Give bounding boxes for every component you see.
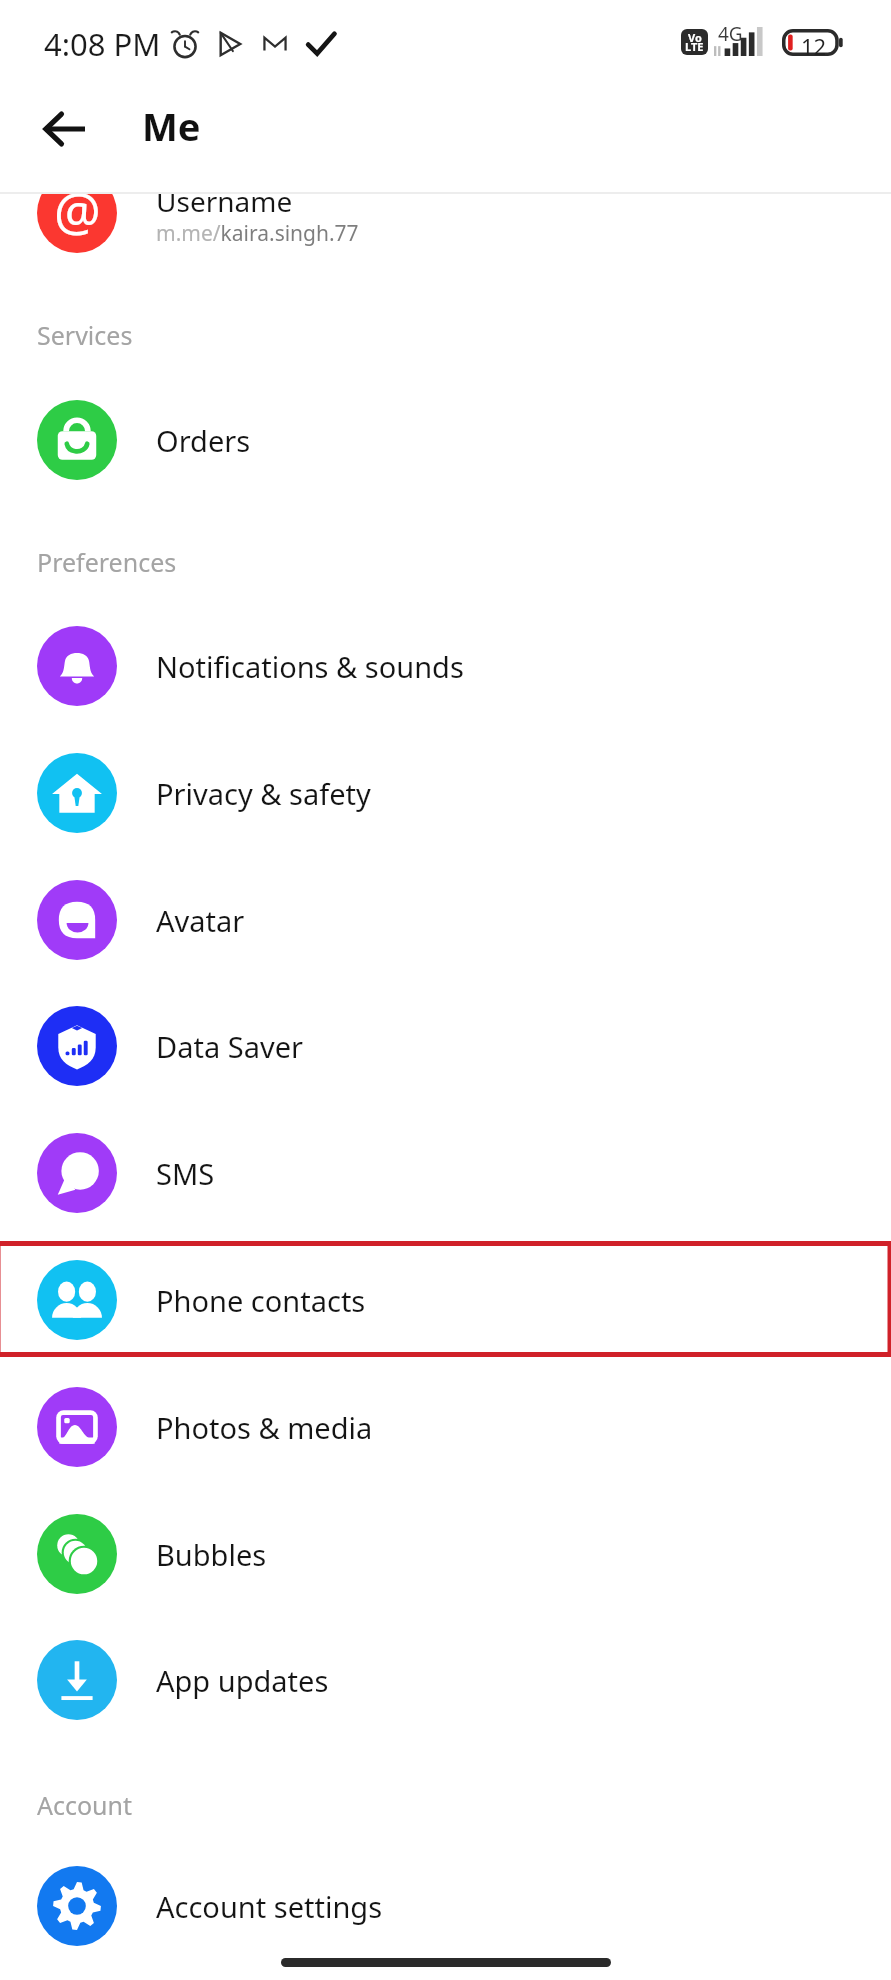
staticText: m.me/kaira.singh.77: [156, 219, 359, 248]
button[interactable]: Photos & media: [0, 1364, 891, 1490]
staticText: 4:08 PM: [44, 23, 161, 65]
staticText: Notifications & sounds: [156, 647, 464, 686]
button[interactable]: Privacy & safety: [0, 730, 891, 856]
staticText: Me: [142, 100, 201, 152]
button[interactable]: SMS: [0, 1110, 891, 1236]
staticText: Photos & media: [156, 1408, 373, 1447]
staticText: Preferences: [37, 545, 177, 579]
button[interactable]: @: [0, 194, 891, 276]
staticText: Data Saver: [156, 1027, 303, 1066]
staticText: @: [54, 194, 101, 246]
button[interactable]: Data Saver: [0, 983, 891, 1109]
staticText: Account: [37, 1788, 133, 1822]
button[interactable]: Phone contacts: [0, 1237, 891, 1363]
staticText: Account settings: [156, 1887, 383, 1926]
staticText: 4G: [718, 21, 743, 47]
staticText: Vo: [688, 30, 702, 45]
staticText: Privacy & safety: [156, 774, 371, 813]
staticText: Services: [37, 318, 133, 352]
staticText: Avatar: [156, 901, 245, 940]
staticText: App updates: [156, 1661, 329, 1700]
staticText: Username: [156, 194, 293, 220]
button[interactable]: Avatar: [0, 857, 891, 983]
button[interactable]: Account settings: [0, 1843, 891, 1969]
staticText: LTE: [685, 39, 704, 54]
button[interactable]: Bubbles: [0, 1491, 891, 1617]
staticText: SMS: [156, 1154, 215, 1193]
button[interactable]: Orders: [0, 377, 891, 503]
button[interactable]: Back: [20, 85, 108, 173]
button[interactable]: App updates: [0, 1617, 891, 1743]
staticText: 12: [801, 31, 827, 61]
staticText: Phone contacts: [156, 1281, 366, 1320]
staticText: Orders: [156, 421, 251, 460]
staticText: Bubbles: [156, 1535, 267, 1574]
button[interactable]: Notifications & sounds: [0, 603, 891, 729]
